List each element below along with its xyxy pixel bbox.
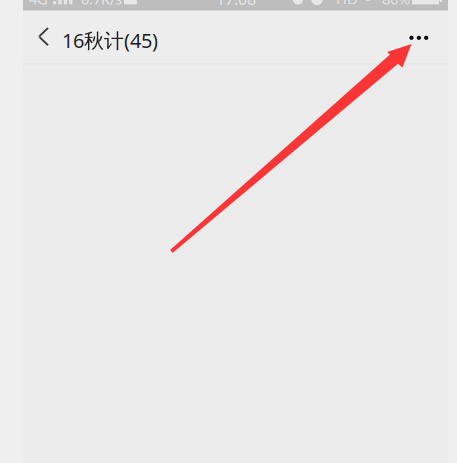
- button[interactable]: More options: [397, 10, 441, 62]
- staticText: 17:08: [216, 0, 256, 9]
- staticText: 4G: [29, 0, 48, 8]
- button[interactable]: Back: [27, 10, 61, 62]
- staticText: HD: [336, 0, 358, 8]
- staticText: 0.7K/s: [81, 0, 122, 8]
- staticText: 16秋计(45): [62, 27, 158, 54]
- staticText: 86%: [382, 0, 410, 8]
